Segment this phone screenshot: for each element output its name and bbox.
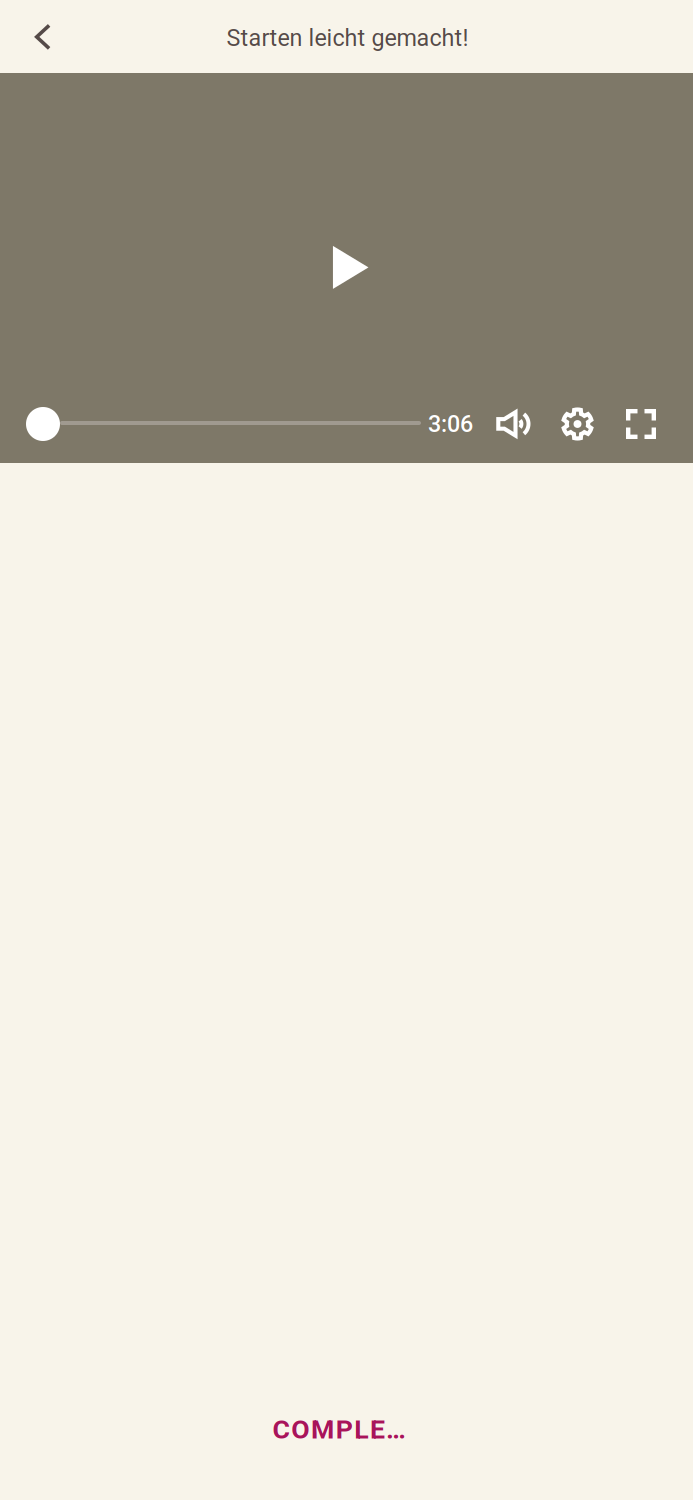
button[interactable]: Volume — [496, 403, 530, 445]
staticText: Starten leicht gemacht! — [226, 24, 468, 52]
button[interactable]: COMPLETE — [0, 1398, 693, 1461]
staticText: COMPLETE — [272, 1414, 420, 1445]
button[interactable]: Play — [308, 230, 384, 306]
button[interactable]: Back — [17, 0, 68, 73]
button[interactable]: Fullscreen — [626, 403, 656, 445]
button[interactable]: Settings — [561, 403, 594, 445]
staticText: 3:06 — [428, 410, 473, 438]
